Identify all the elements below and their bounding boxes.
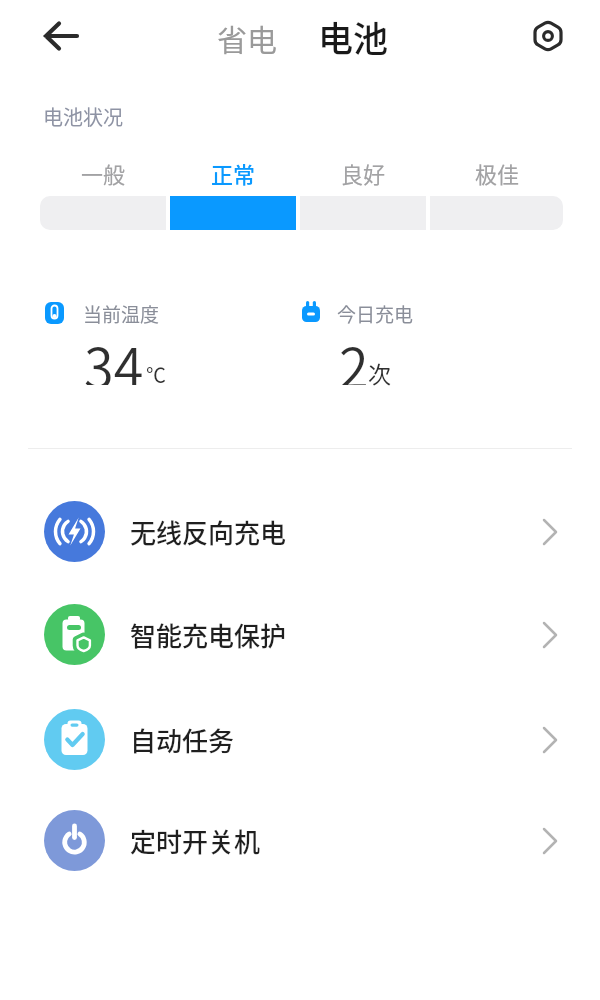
button[interactable]: 定时开关机 [0,793,600,889]
button[interactable]: 电池 [313,9,393,63]
staticText: 次 [368,356,391,388]
staticText: 智能充电保护 [130,616,287,654]
button[interactable] [522,10,574,62]
button[interactable]: 智能充电保护 [0,587,600,683]
staticText: 省电 [217,16,277,59]
staticText: 电池 [318,11,389,62]
button[interactable]: 自动任务 [0,692,600,788]
staticText: 2 [339,325,369,385]
staticText: 无线反向充电 [130,513,287,551]
staticText: 正常 [211,157,256,187]
staticText: 极佳 [475,157,520,187]
staticText: 34 [84,325,144,385]
staticText: 良好 [341,157,386,187]
button[interactable]: 省电 [207,11,287,63]
staticText: ℃ [146,360,166,388]
staticText: 自动任务 [130,721,235,759]
staticText: 电池状况 [43,102,123,131]
staticText: 今日充电 [337,300,414,326]
staticText: 定时开关机 [130,822,261,860]
staticText: 一般 [81,157,126,187]
staticText: 当前温度 [83,300,160,326]
button[interactable] [34,10,86,62]
button[interactable]: 无线反向充电 [0,484,600,580]
